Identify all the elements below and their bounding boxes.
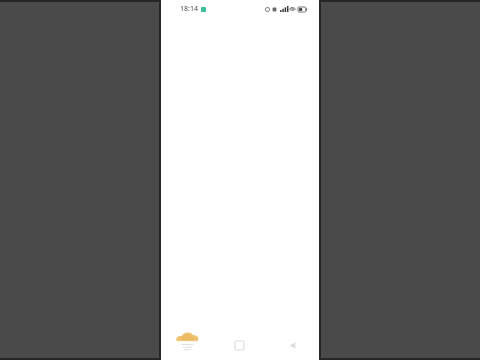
button[interactable]: Back bbox=[266, 330, 319, 360]
button[interactable]: Recent apps bbox=[161, 330, 213, 360]
staticText: 18:14 bbox=[180, 4, 198, 14]
button[interactable]: Home bbox=[213, 330, 266, 360]
